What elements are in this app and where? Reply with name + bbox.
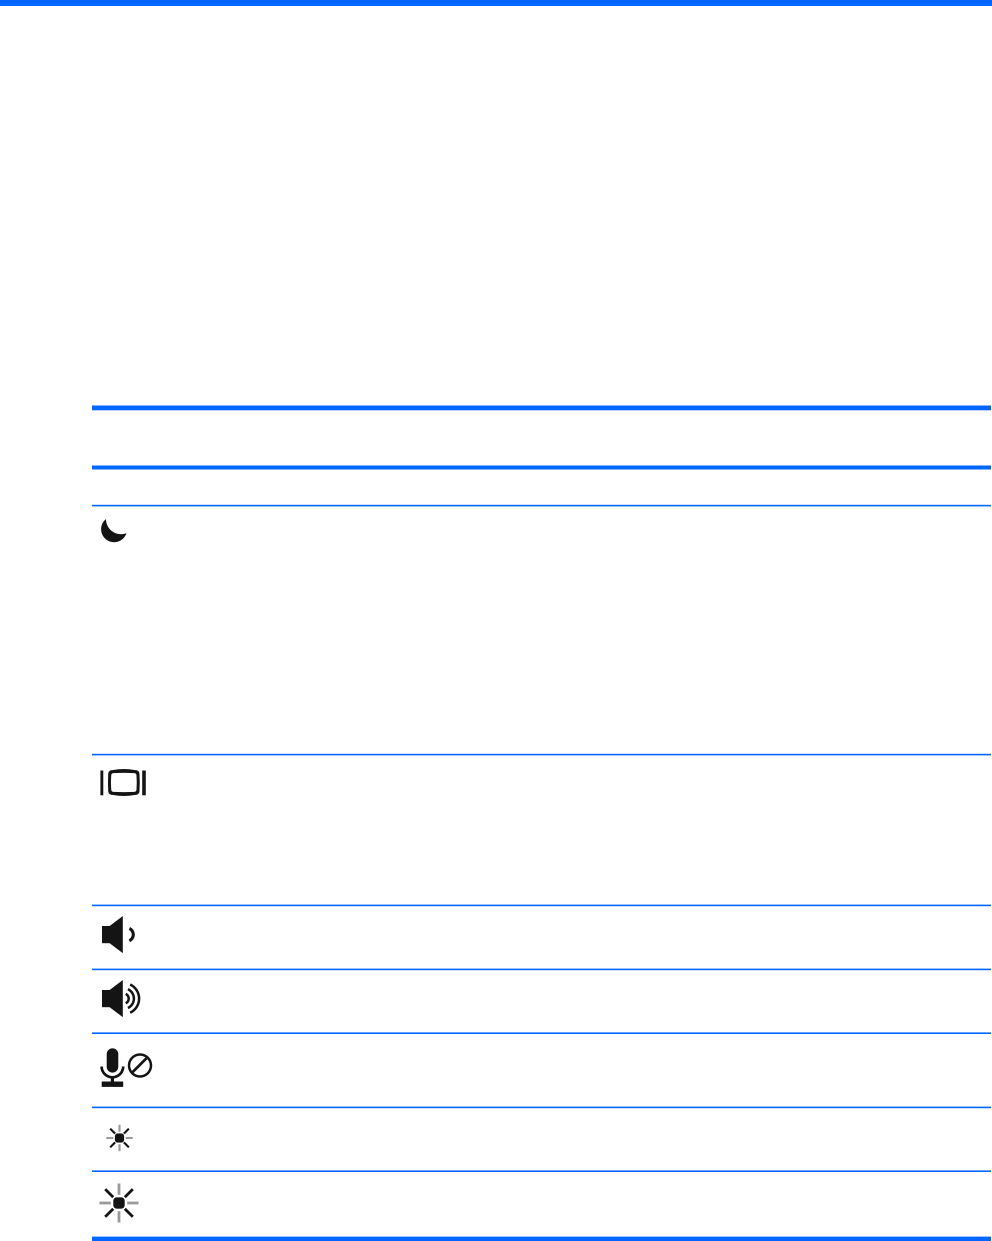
button[interactable]: Increase speaker volume	[92, 970, 991, 1032]
button[interactable]: Decrease screen brightness	[92, 1108, 991, 1170]
button[interactable]: Increase screen brightness	[92, 1172, 991, 1237]
button[interactable]: Switch screen image	[92, 755, 991, 905]
button[interactable]: Sleep	[92, 506, 991, 754]
button[interactable]: Decrease speaker volume	[92, 906, 991, 969]
button[interactable]: Mute microphone	[92, 1034, 991, 1107]
